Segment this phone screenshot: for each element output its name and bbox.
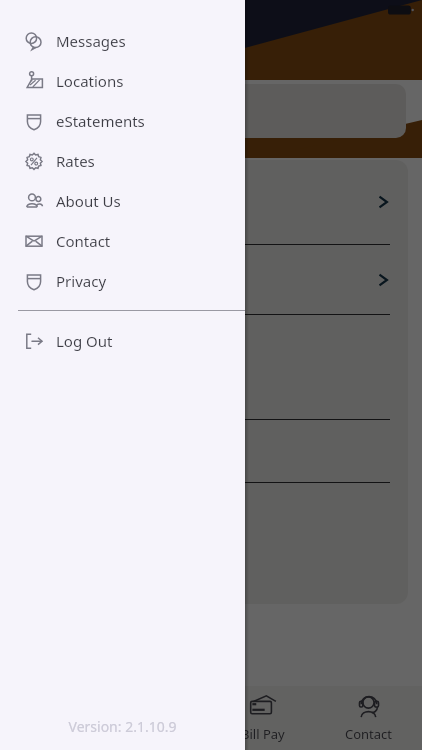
staticText: Rates <box>56 151 95 171</box>
button[interactable] <box>14 245 408 314</box>
button[interactable]: Contact <box>316 686 422 750</box>
button[interactable]: About Us <box>0 181 245 221</box>
button[interactable]: Deposit <box>105 686 210 750</box>
button[interactable]: Contact <box>0 221 245 261</box>
staticText: Deposit <box>134 725 181 743</box>
button[interactable]: Privacy <box>0 261 245 301</box>
staticText: Contact <box>56 231 111 251</box>
button[interactable]: Locations <box>0 61 245 101</box>
button[interactable]: Rates <box>0 141 245 181</box>
staticText: Messages <box>56 31 126 51</box>
staticText: Version: 2.1.10.9 <box>0 717 245 736</box>
button[interactable] <box>14 160 408 244</box>
button[interactable]: Bill Pay <box>210 686 316 750</box>
button[interactable]: Log Out <box>0 321 245 361</box>
staticText: Privacy <box>56 271 107 291</box>
staticText: Scheduled <box>72 101 146 121</box>
staticText: About Us <box>56 191 121 211</box>
button[interactable]: Scheduled <box>16 84 406 138</box>
staticText: Locations <box>56 71 124 91</box>
button[interactable]: eStatements <box>0 101 245 141</box>
staticText: Contact <box>345 725 393 743</box>
staticText: Log Out <box>56 331 113 351</box>
staticText: eStatements <box>56 111 145 131</box>
button[interactable]: Accounts <box>0 686 105 750</box>
staticText: Bill Pay <box>241 725 285 743</box>
button[interactable]: Messages <box>0 21 245 61</box>
staticText: Accounts <box>25 725 81 743</box>
